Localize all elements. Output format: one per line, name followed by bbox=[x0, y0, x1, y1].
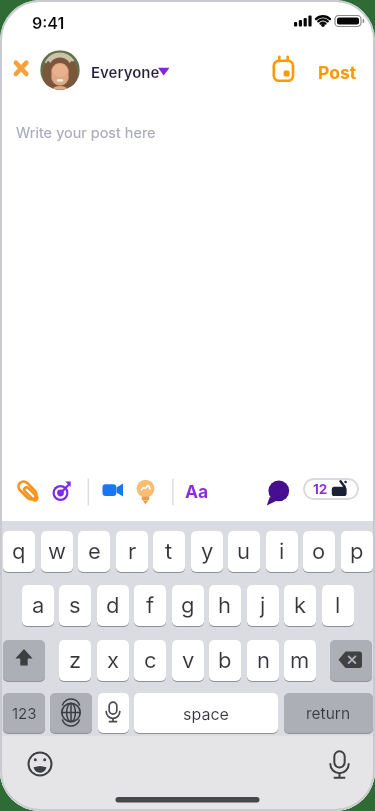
button[interactable]: r bbox=[116, 531, 148, 572]
button[interactable] bbox=[130, 474, 160, 508]
button[interactable]: q bbox=[3, 531, 35, 572]
staticText: return bbox=[306, 704, 351, 723]
button[interactable]: Aa bbox=[185, 481, 209, 502]
staticText: a bbox=[32, 592, 45, 619]
staticText: 12 bbox=[313, 481, 328, 497]
button[interactable]: c bbox=[134, 640, 166, 681]
staticText: 123 bbox=[12, 704, 37, 722]
button[interactable]: v bbox=[172, 640, 204, 681]
staticText: n bbox=[257, 647, 270, 674]
staticText: b bbox=[218, 647, 232, 674]
staticText: d bbox=[106, 592, 120, 619]
staticText: m bbox=[290, 647, 310, 674]
staticText: h bbox=[218, 592, 232, 619]
button[interactable]: u bbox=[228, 531, 260, 572]
staticText: g bbox=[181, 592, 195, 619]
button[interactable] bbox=[10, 56, 36, 82]
button[interactable]: Post bbox=[318, 62, 357, 83]
button[interactable]: d bbox=[97, 585, 129, 626]
button[interactable]: p bbox=[341, 531, 373, 572]
staticText: e bbox=[88, 538, 101, 565]
staticText: space bbox=[183, 704, 229, 723]
staticText: z bbox=[69, 647, 82, 674]
staticText: y bbox=[201, 538, 214, 565]
staticText: s bbox=[69, 592, 81, 619]
staticText: l bbox=[335, 592, 341, 619]
button[interactable]: e bbox=[78, 531, 110, 572]
button[interactable] bbox=[264, 476, 294, 510]
button[interactable]: return bbox=[284, 693, 373, 733]
staticText: f bbox=[146, 592, 155, 619]
button[interactable]: b bbox=[209, 640, 241, 681]
button[interactable] bbox=[268, 52, 300, 86]
button[interactable]: space bbox=[134, 693, 278, 733]
button[interactable] bbox=[50, 693, 92, 733]
staticText: j bbox=[260, 592, 266, 619]
button[interactable]: m bbox=[284, 640, 316, 681]
button[interactable]: g bbox=[172, 585, 204, 626]
staticText: Write your post here bbox=[16, 124, 156, 142]
staticText: 9:41 bbox=[32, 13, 65, 32]
button[interactable]: j bbox=[247, 585, 279, 626]
button[interactable]: 12 bbox=[303, 478, 359, 500]
staticText: Everyone bbox=[91, 63, 160, 81]
button[interactable]: o bbox=[303, 531, 335, 572]
button[interactable]: z bbox=[59, 640, 91, 681]
button[interactable]: i bbox=[266, 531, 298, 572]
button[interactable] bbox=[98, 693, 129, 733]
button[interactable] bbox=[14, 474, 44, 508]
staticText: w bbox=[48, 538, 67, 565]
button[interactable]: k bbox=[284, 585, 316, 626]
staticText: c bbox=[144, 647, 157, 674]
staticText: u bbox=[237, 538, 251, 565]
button[interactable] bbox=[48, 476, 76, 506]
staticText: v bbox=[182, 647, 195, 674]
staticText: x bbox=[107, 647, 120, 674]
button[interactable]: y bbox=[191, 531, 223, 572]
staticText: k bbox=[294, 592, 307, 619]
button[interactable] bbox=[330, 640, 372, 681]
button[interactable]: l bbox=[322, 585, 354, 626]
button[interactable] bbox=[3, 640, 45, 681]
button[interactable]: s bbox=[59, 585, 91, 626]
button[interactable] bbox=[40, 50, 160, 90]
staticText: i bbox=[279, 538, 285, 565]
staticText: r bbox=[128, 538, 137, 565]
staticText: p bbox=[350, 538, 364, 565]
button[interactable]: f bbox=[134, 585, 166, 626]
button[interactable]: w bbox=[41, 531, 73, 572]
button[interactable]: 123 bbox=[3, 693, 45, 733]
staticText: t bbox=[165, 538, 173, 565]
staticText: o bbox=[312, 538, 326, 565]
button[interactable]: t bbox=[153, 531, 185, 572]
button[interactable]: a bbox=[22, 585, 54, 626]
button[interactable] bbox=[98, 476, 128, 504]
staticText: q bbox=[12, 538, 26, 565]
button[interactable]: n bbox=[247, 640, 279, 681]
button[interactable]: x bbox=[97, 640, 129, 681]
button[interactable]: h bbox=[209, 585, 241, 626]
